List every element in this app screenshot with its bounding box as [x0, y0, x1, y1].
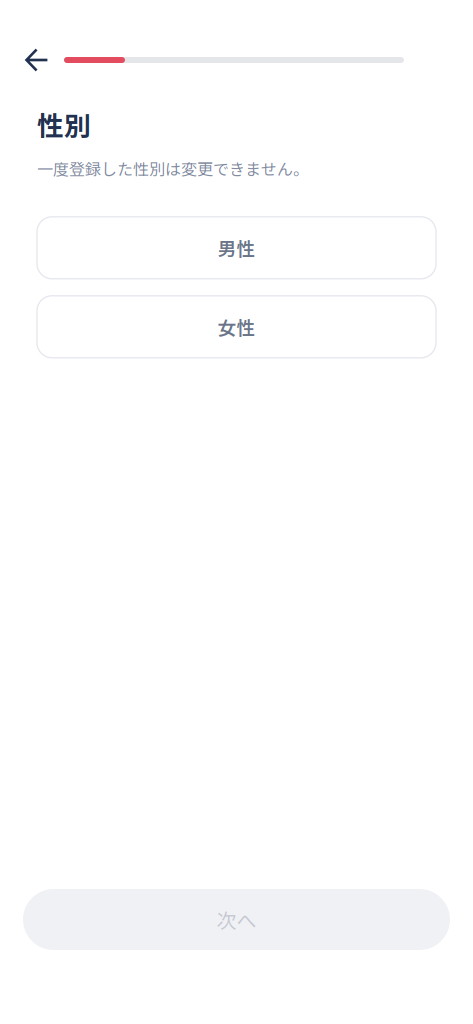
staticText: 女性: [217, 313, 255, 340]
staticText: 性別: [37, 105, 91, 144]
staticText: 次へ: [216, 905, 256, 934]
button[interactable]: Back: [22, 45, 52, 75]
staticText: 一度登録した性別は変更できません。: [37, 157, 309, 180]
button[interactable]: 女性: [37, 296, 436, 358]
button[interactable]: 男性: [37, 217, 436, 279]
button[interactable]: 次へ: [23, 889, 450, 950]
staticText: 男性: [217, 234, 255, 261]
